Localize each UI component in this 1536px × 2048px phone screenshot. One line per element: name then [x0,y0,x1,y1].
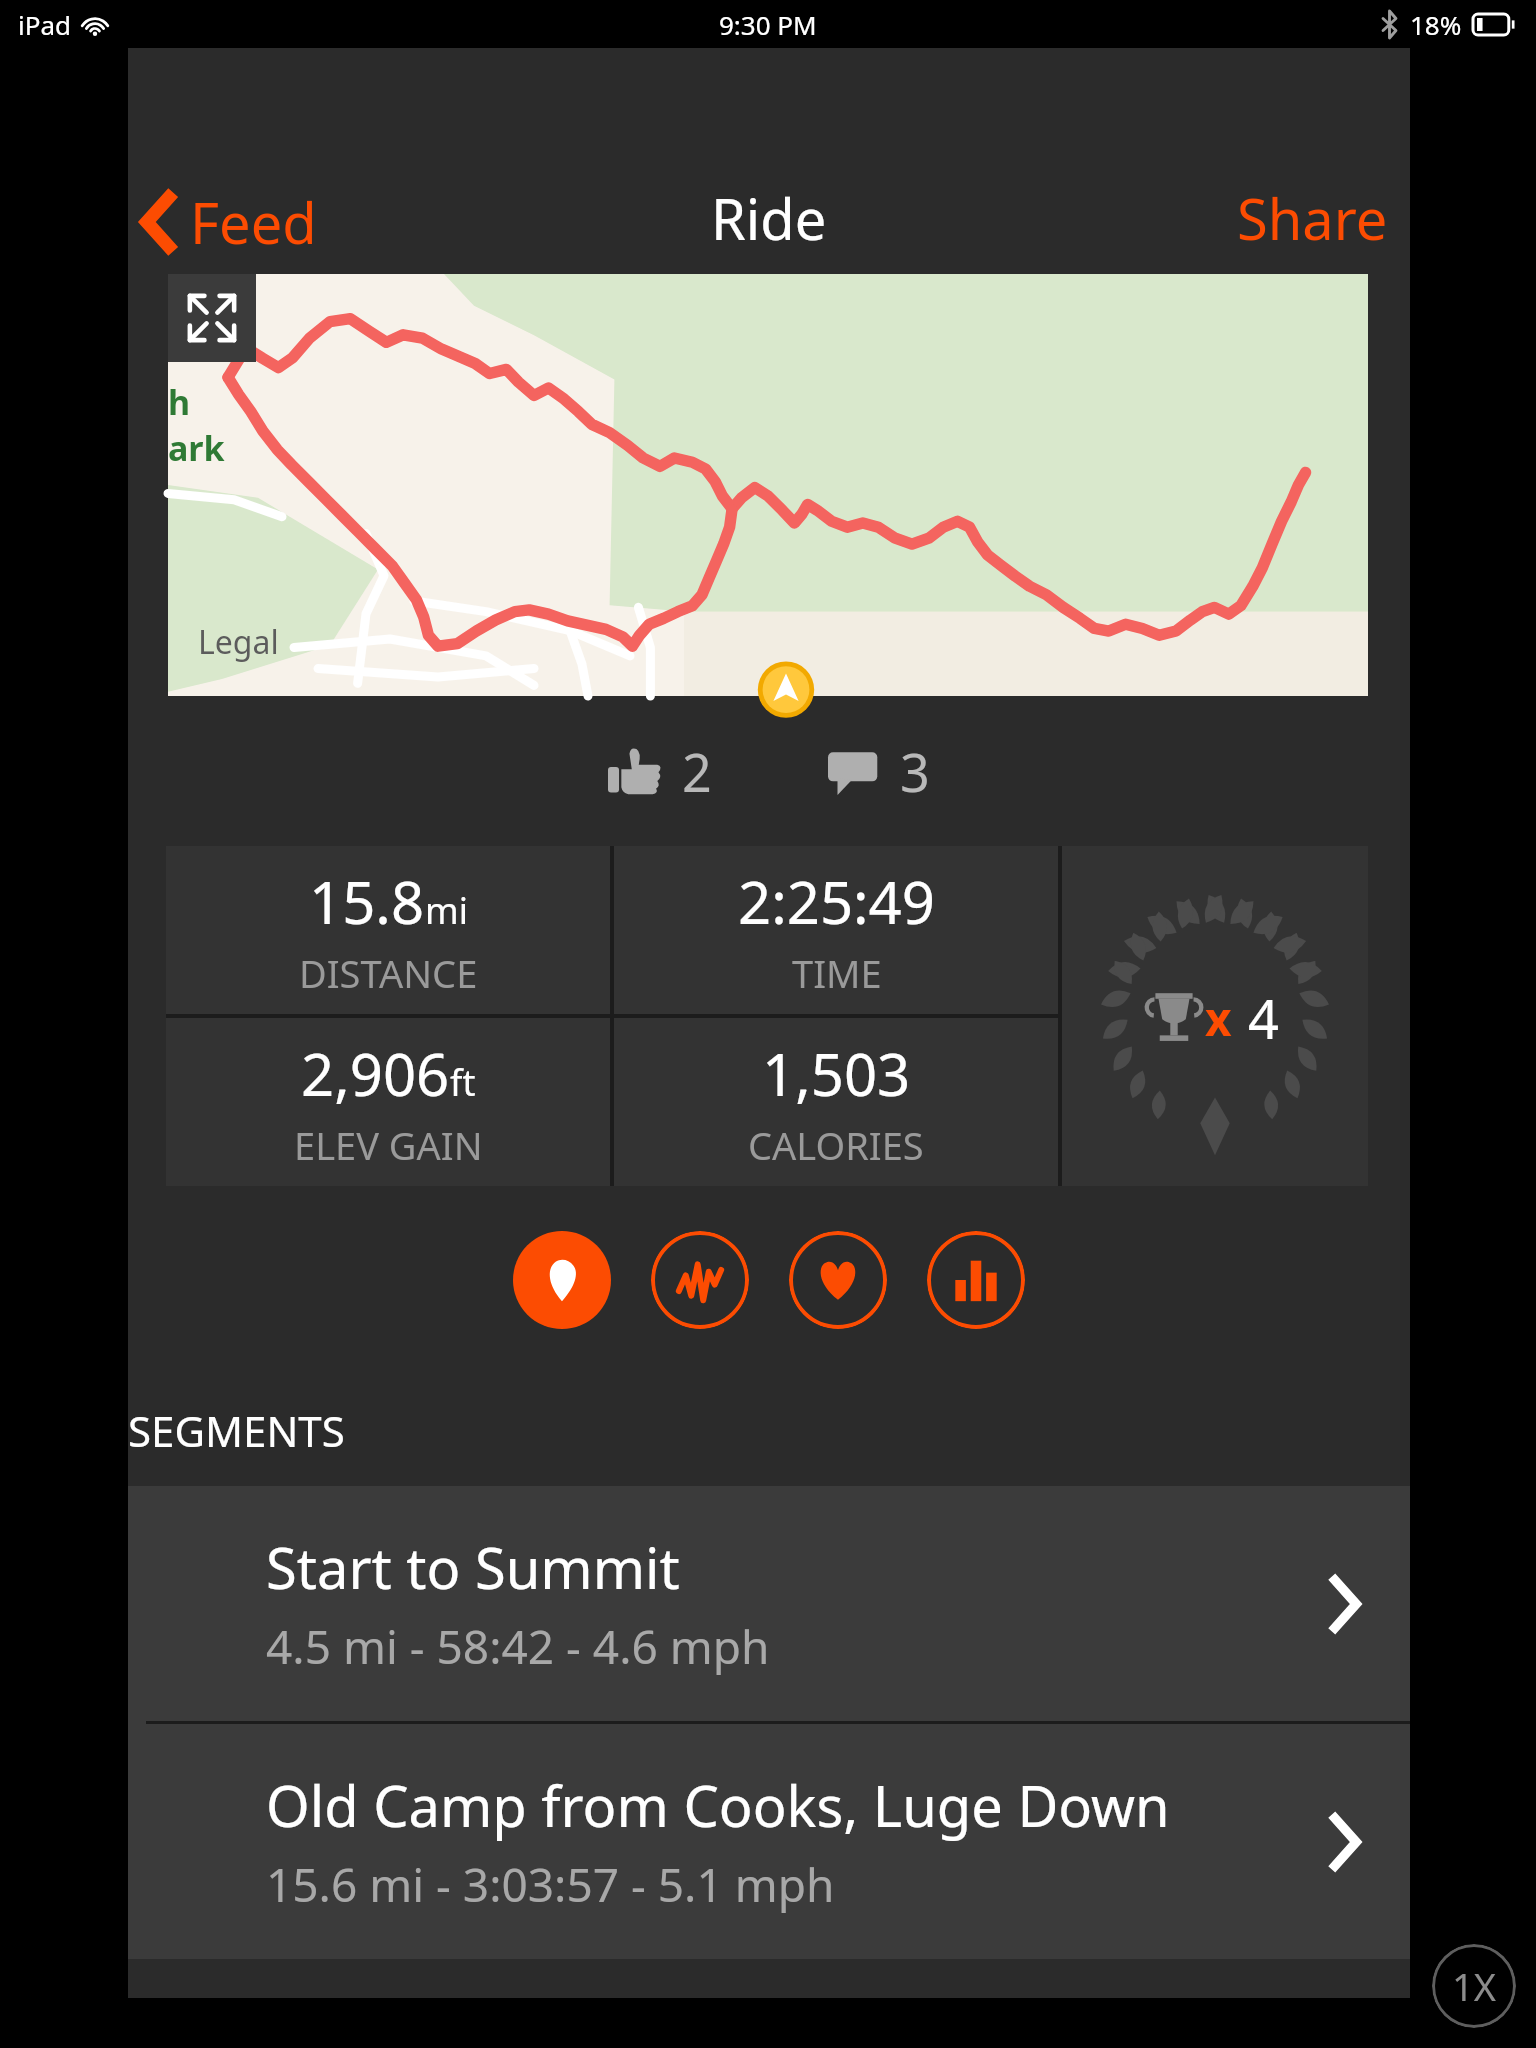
button[interactable]: Heart rate [789,1231,887,1329]
staticText: Ride [711,180,827,256]
button[interactable]: Share [1237,180,1388,256]
staticText: 4 [1248,981,1279,1055]
button[interactable]: Zoom level 1X [1432,1944,1516,2028]
staticText: 1X [1452,1960,1497,2012]
staticText: DISTANCE [299,947,478,999]
staticText: Feed [190,184,317,260]
button[interactable]: Old Camp from Cooks, Luge Down [128,1724,1410,1959]
staticText: 4.5 mi - 58:42 - 4.6 mph [266,1615,770,1678]
button[interactable]: 3 [818,736,940,807]
staticText: 15.6 mi - 3:03:57 - 5.1 mph [266,1853,835,1916]
staticText: 2 [682,736,712,807]
button[interactable]: Achievements [1062,846,1368,1186]
staticText: mi [425,886,468,935]
button[interactable]: Start to Summit [128,1486,1410,1721]
button[interactable]: Stats [927,1231,1025,1329]
staticText: ft [450,1058,476,1107]
staticText: ELEV GAIN [294,1119,483,1171]
button[interactable]: 2,906 [166,1018,610,1186]
button[interactable]: 15.8 [166,846,610,1014]
staticText: TIME [792,947,882,999]
staticText: Share [1237,180,1388,256]
staticText: 2:25:49 [738,862,935,941]
staticText: 1,503 [762,1034,911,1113]
staticText: 2,906 [301,1034,450,1113]
button[interactable]: 2 [598,736,722,807]
staticText: x [1205,987,1232,1050]
staticText: 18% [1410,7,1462,42]
staticText: 15.8 [309,862,425,941]
staticText: Start to Summit [266,1529,680,1605]
button[interactable]: Expand map [168,274,256,362]
button[interactable]: 2:25:49 [614,846,1058,1014]
staticText: 9:30 PM [719,7,817,42]
staticText: h ark [168,379,225,471]
button[interactable]: Analysis [651,1231,749,1329]
staticText: SEGMENTS [128,1402,345,1459]
staticText: CALORIES [748,1119,924,1171]
staticText: Old Camp from Cooks, Luge Down [266,1767,1170,1843]
staticText: 3 [900,736,930,807]
staticText: iPad [18,7,72,42]
button[interactable]: Feed [138,184,317,260]
button[interactable]: Map [513,1231,611,1329]
staticText: Legal [198,620,279,664]
button[interactable]: 1,503 [614,1018,1058,1186]
